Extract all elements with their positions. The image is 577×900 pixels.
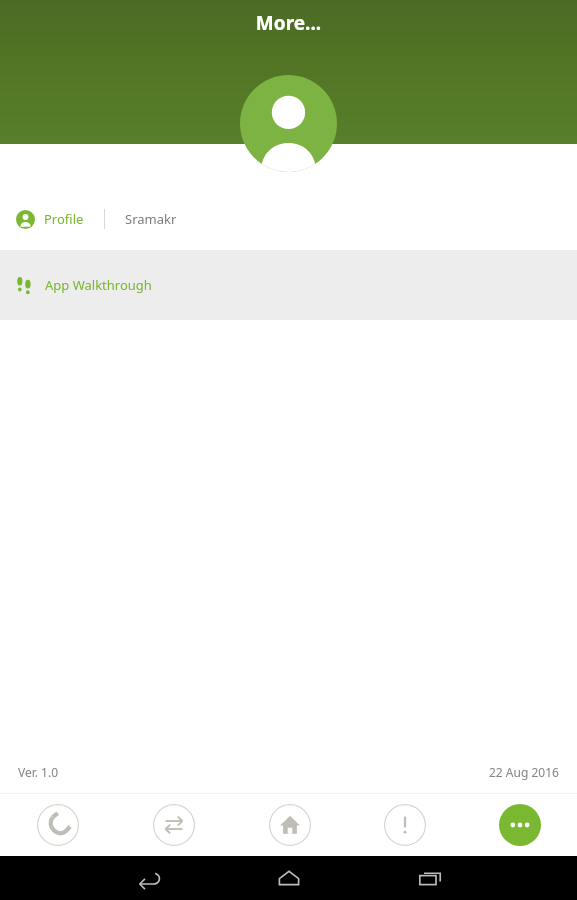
button[interactable]: Home	[218, 863, 359, 893]
button[interactable]: Profile	[0, 144, 577, 250]
button[interactable]: Profile photo	[240, 75, 337, 172]
button[interactable]: App Walkthrough	[0, 250, 577, 320]
button[interactable]: Recents	[359, 863, 500, 893]
staticText: App Walkthrough	[45, 276, 152, 294]
button[interactable]: Transfer	[116, 804, 232, 846]
button[interactable]: Home	[232, 804, 347, 846]
staticText: Ver. 1.0	[18, 764, 59, 780]
staticText: More...	[0, 10, 577, 36]
button[interactable]: Call	[0, 804, 116, 846]
button[interactable]: Back	[77, 863, 218, 893]
button[interactable]: More	[499, 804, 541, 846]
staticText: Sramakr	[125, 210, 177, 228]
button[interactable]: Alerts	[347, 804, 462, 846]
staticText: Profile	[44, 210, 84, 228]
staticText: 22 Aug 2016	[489, 764, 559, 780]
